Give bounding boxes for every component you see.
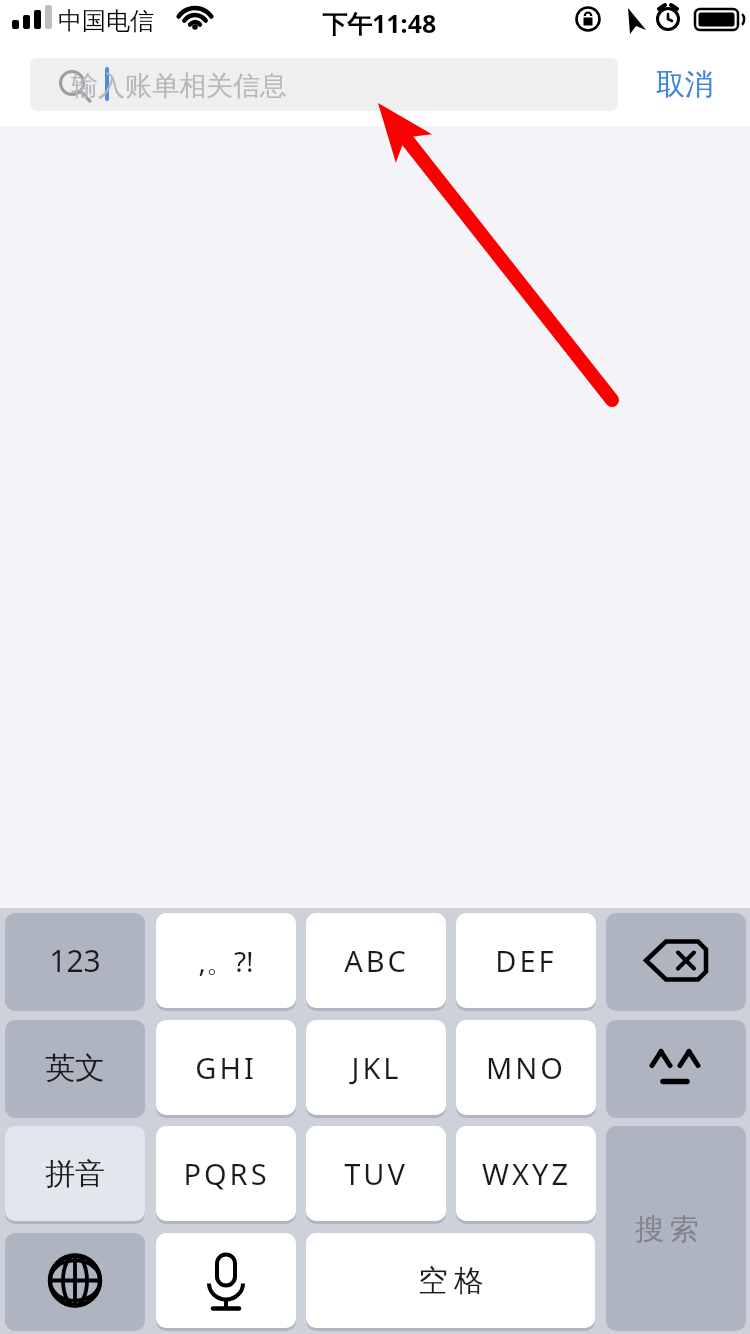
button[interactable]: ,。?! <box>156 913 296 1008</box>
staticText: ,。?! <box>198 942 254 980</box>
staticText: JKL <box>351 1048 402 1087</box>
button[interactable]: DEF <box>456 913 596 1008</box>
staticText: ABC <box>344 941 409 980</box>
button[interactable]: 输入账单相关信息 <box>30 58 618 111</box>
staticText: 拼音 <box>45 1155 105 1193</box>
button[interactable]: ABC <box>306 913 446 1008</box>
staticText: MNO <box>486 1048 566 1087</box>
button[interactable]: Emoji <box>606 1020 746 1115</box>
staticText: DEF <box>495 941 557 980</box>
staticText: 搜索 <box>632 1211 702 1248</box>
button[interactable]: Backspace <box>606 913 746 1008</box>
button[interactable]: Search <box>606 1126 746 1328</box>
button[interactable]: TUV <box>306 1126 446 1221</box>
staticText: 空格 <box>415 1262 487 1300</box>
staticText: GHI <box>195 1048 257 1087</box>
button[interactable]: Switch keyboard <box>5 1233 145 1328</box>
button[interactable]: 拼音 <box>5 1126 145 1221</box>
button[interactable]: GHI <box>156 1020 296 1115</box>
staticText: 下午11:48 <box>322 6 437 40</box>
button[interactable]: PQRS <box>156 1126 296 1221</box>
staticText: 英文 <box>45 1049 105 1087</box>
button[interactable]: 123 <box>5 913 145 1008</box>
staticText: PQRS <box>183 1154 270 1193</box>
button[interactable]: JKL <box>306 1020 446 1115</box>
staticText: 输入账单相关信息 <box>71 69 287 103</box>
staticText: WXYZ <box>482 1154 571 1193</box>
staticText: TUV <box>344 1154 408 1193</box>
button[interactable]: 空格 <box>306 1233 595 1328</box>
staticText: 取消 <box>656 66 714 103</box>
staticText: 中国电信 <box>58 6 154 36</box>
button[interactable]: 取消 <box>640 58 730 111</box>
button[interactable]: WXYZ <box>456 1126 596 1221</box>
staticText: 123 <box>49 940 101 981</box>
button[interactable]: MNO <box>456 1020 596 1115</box>
button[interactable]: 英文 <box>5 1020 145 1115</box>
button[interactable]: Voice input <box>156 1233 296 1328</box>
